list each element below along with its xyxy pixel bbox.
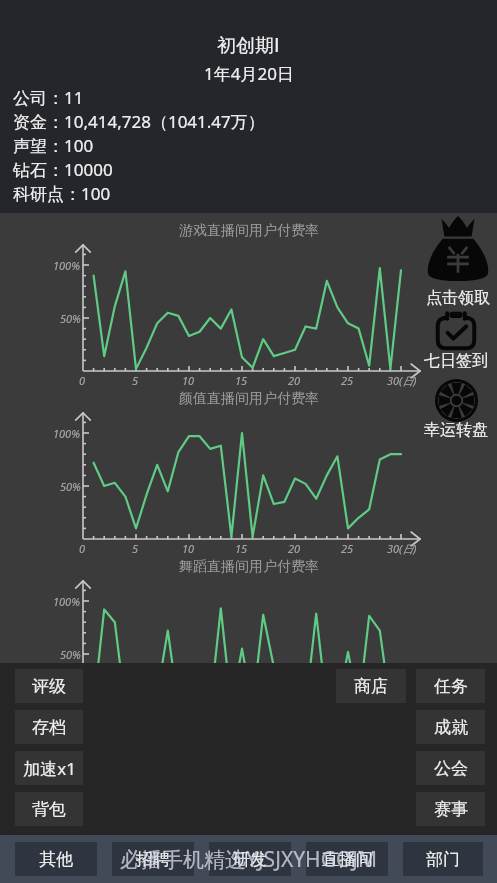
button[interactable]: 背包 xyxy=(15,792,83,826)
button[interactable]: Seven day check-in xyxy=(416,312,496,373)
staticText: 评级 xyxy=(32,676,66,697)
staticText: 声望：100 xyxy=(13,134,94,157)
button[interactable]: 研发 xyxy=(209,842,291,876)
button[interactable]: 任务 xyxy=(416,669,485,703)
button[interactable]: 直播间 xyxy=(306,842,388,876)
staticText: 加速x1 xyxy=(23,757,76,780)
staticText: 点击领取 xyxy=(426,288,490,308)
staticText: 100% xyxy=(53,426,80,441)
staticText: 50% xyxy=(60,479,81,494)
button[interactable]: Claim reward xyxy=(418,216,497,310)
staticText: 直播间 xyxy=(322,849,373,870)
staticText: 游戏直播间用户付费率 xyxy=(179,222,319,240)
staticText: 1年4月20日 xyxy=(204,62,294,85)
button[interactable]: 赛事 xyxy=(416,792,485,826)
staticText: 25 xyxy=(341,541,354,556)
staticText: 20 xyxy=(288,541,301,556)
button[interactable]: Lucky wheel xyxy=(416,379,496,442)
staticText: 0 xyxy=(79,541,86,556)
staticText: 幸运转盘 xyxy=(424,420,488,440)
staticText: 商店 xyxy=(354,676,388,697)
button[interactable]: 成就 xyxy=(416,710,485,744)
button[interactable]: 公会 xyxy=(416,751,485,785)
staticText: 30(日) xyxy=(387,373,417,388)
staticText: 50% xyxy=(60,647,81,662)
staticText: 研发 xyxy=(233,849,267,870)
staticText: 舞蹈直播间用户付费率 xyxy=(179,558,319,576)
staticText: 七日签到 xyxy=(424,351,488,371)
staticText: 颜值直播间用户付费率 xyxy=(179,390,319,408)
staticText: 10 xyxy=(182,373,195,388)
staticText: 20 xyxy=(288,373,301,388)
staticText: 成就 xyxy=(434,717,468,738)
button[interactable]: 招聘 xyxy=(112,842,194,876)
staticText: 必播手机精选YJSJXYHGOJM xyxy=(120,845,378,874)
staticText: 5 xyxy=(132,541,139,556)
staticText: 公会 xyxy=(434,758,468,779)
staticText: 初创期Ⅰ xyxy=(217,34,280,58)
staticText: 15 xyxy=(235,373,248,388)
staticText: 5 xyxy=(132,373,139,388)
staticText: 30(日) xyxy=(387,541,417,556)
staticText: 钻石：10000 xyxy=(13,158,113,181)
button[interactable]: 商店 xyxy=(336,669,406,703)
button[interactable]: 加速x1 xyxy=(15,751,83,785)
staticText: 存档 xyxy=(32,717,66,738)
button[interactable]: 存档 xyxy=(15,710,83,744)
staticText: 其他 xyxy=(39,849,73,870)
button[interactable]: 其他 xyxy=(15,842,97,876)
staticText: 50% xyxy=(60,311,81,326)
staticText: 部门 xyxy=(426,849,460,870)
staticText: 资金：10,414,728（1041.47万） xyxy=(13,110,265,133)
staticText: 10 xyxy=(182,541,195,556)
staticText: 背包 xyxy=(32,799,66,820)
staticText: 100% xyxy=(53,258,80,273)
staticText: 科研点：100 xyxy=(13,182,111,205)
staticText: 任务 xyxy=(434,676,468,697)
staticText: 100% xyxy=(53,594,80,609)
button[interactable]: 部门 xyxy=(403,842,483,876)
staticText: 赛事 xyxy=(434,799,468,820)
staticText: 25 xyxy=(341,373,354,388)
staticText: 15 xyxy=(235,541,248,556)
staticText: 0 xyxy=(79,373,86,388)
staticText: 招聘 xyxy=(136,849,170,870)
staticText: 公司：11 xyxy=(13,86,84,109)
button[interactable]: 评级 xyxy=(15,669,83,703)
